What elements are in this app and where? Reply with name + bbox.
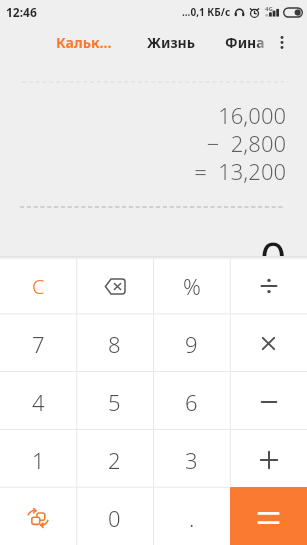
- button[interactable]: 2: [76, 429, 153, 487]
- button[interactable]: Кальк...: [17, 26, 151, 58]
- button[interactable]: 3: [153, 429, 230, 487]
- button[interactable]: 4: [0, 371, 76, 429]
- staticText: Кальк...: [56, 33, 112, 52]
- staticText: 3: [185, 445, 198, 475]
- button[interactable]: Unit converter: [0, 487, 76, 545]
- staticText: 4G: [265, 5, 273, 13]
- button[interactable]: 1: [0, 429, 76, 487]
- staticText: 1: [32, 445, 45, 475]
- staticText: 4: [32, 387, 45, 417]
- button[interactable]: Minus: [230, 371, 307, 429]
- button[interactable]: More options: [257, 26, 307, 58]
- staticText: 9: [185, 329, 198, 359]
- staticText: ...0,1 КБ/c: [182, 5, 231, 19]
- button[interactable]: C: [0, 256, 76, 313]
- staticText: Финанс: [225, 33, 273, 52]
- button[interactable]: 7: [0, 313, 76, 371]
- other: Plus: [260, 451, 278, 469]
- staticText: 8: [108, 329, 121, 359]
- staticText: 2: [108, 445, 121, 475]
- staticText: 7: [32, 329, 45, 359]
- button[interactable]: .: [153, 487, 230, 545]
- button[interactable]: 6: [153, 371, 230, 429]
- button[interactable]: Multiply: [230, 313, 307, 371]
- button[interactable]: Жизнь: [128, 26, 215, 58]
- button[interactable]: 9: [153, 313, 230, 371]
- button[interactable]: Backspace: [76, 256, 153, 313]
- button[interactable]: Equals: [230, 487, 307, 545]
- other: Minus: [261, 400, 277, 404]
- staticText: %: [183, 271, 201, 301]
- staticText: .: [189, 503, 195, 533]
- staticText: 0: [108, 503, 121, 533]
- other: Divide: [261, 278, 277, 294]
- staticText: 6: [185, 387, 198, 417]
- button[interactable]: 0: [76, 487, 153, 545]
- other: Unit converter: [27, 508, 49, 528]
- other: Equals: [259, 512, 278, 524]
- staticText: 5: [108, 387, 121, 417]
- button[interactable]: 8: [76, 313, 153, 371]
- staticText: C: [32, 273, 45, 300]
- staticText: 0: [260, 227, 287, 290]
- button[interactable]: %: [153, 256, 230, 313]
- staticText: 12:46: [6, 4, 37, 20]
- button[interactable]: Финанс: [221, 26, 273, 58]
- staticText: Жизнь: [147, 33, 196, 52]
- button[interactable]: Divide: [230, 256, 307, 313]
- staticText: 16,000 − 2,800 = 13,200: [0, 100, 286, 187]
- other: Backspace: [105, 278, 125, 295]
- button[interactable]: Plus: [230, 429, 307, 487]
- button[interactable]: 5: [76, 371, 153, 429]
- other: Multiply: [262, 337, 275, 350]
